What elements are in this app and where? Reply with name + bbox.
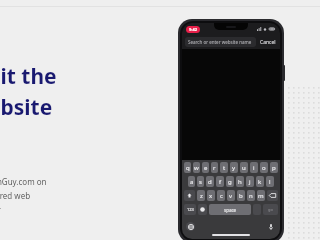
- staticText: z: [200, 192, 203, 200]
- button[interactable]: l: [266, 176, 274, 187]
- staticText: q: [186, 164, 190, 172]
- button[interactable]: s: [197, 176, 204, 187]
- staticText: y: [232, 164, 236, 172]
- button[interactable]: c: [217, 190, 225, 201]
- staticText: s: [199, 178, 202, 186]
- staticText: o: [262, 164, 266, 172]
- staticText: l: [269, 178, 271, 186]
- staticText: p: [272, 164, 276, 172]
- button[interactable]: z: [197, 190, 205, 201]
- button[interactable]: 123: [184, 204, 196, 215]
- staticText: a: [190, 178, 194, 186]
- button[interactable]: j: [246, 176, 254, 187]
- button[interactable]: h: [236, 176, 244, 187]
- button[interactable]: e: [202, 162, 209, 173]
- staticText: d: [208, 178, 212, 186]
- staticText: m: [258, 192, 264, 200]
- staticText: 123: [187, 207, 194, 212]
- button[interactable]: n: [247, 190, 255, 201]
- staticText: e: [204, 164, 208, 172]
- button[interactable]: r: [211, 162, 218, 173]
- staticText: go: [268, 207, 273, 212]
- button[interactable]: Switch keyboard: [186, 222, 195, 231]
- staticText: a preferred web: [0, 190, 31, 201]
- staticText: r: [213, 164, 216, 172]
- button[interactable]: g: [226, 176, 234, 187]
- button[interactable]: a: [188, 176, 195, 187]
- staticText: j: [249, 178, 251, 186]
- staticText: w: [194, 164, 199, 172]
- staticText: c: [220, 192, 223, 200]
- button[interactable]: y: [230, 162, 238, 173]
- button[interactable]: t: [220, 162, 228, 173]
- staticText: x: [209, 192, 213, 200]
- button[interactable]: Cancel: [259, 37, 277, 48]
- button[interactable]: i: [250, 162, 258, 173]
- button[interactable]: f: [216, 176, 224, 187]
- staticText: Visit the: [0, 62, 57, 91]
- button[interactable]: p: [270, 162, 278, 173]
- button[interactable]: v: [227, 190, 235, 201]
- button[interactable]: b: [237, 190, 245, 201]
- staticText: h: [238, 178, 242, 186]
- staticText: t: [223, 164, 226, 172]
- button[interactable]: go: [263, 204, 278, 215]
- button[interactable]: Backspace: [267, 190, 278, 201]
- button[interactable]: x: [207, 190, 215, 201]
- staticText: f: [219, 178, 222, 186]
- staticText: k: [258, 178, 262, 186]
- staticText: 9:42: [189, 27, 197, 32]
- staticText: Cancel: [260, 39, 276, 46]
- staticText: ThePornGuy.com on: [0, 176, 47, 187]
- staticText: Search or enter website name: [188, 39, 252, 45]
- staticText: n: [249, 192, 253, 200]
- button[interactable]: o: [260, 162, 268, 173]
- staticText: v: [229, 192, 233, 200]
- button[interactable]: Shift: [184, 190, 195, 201]
- button[interactable]: Emoji: [198, 204, 207, 215]
- staticText: g: [228, 178, 232, 186]
- staticText: u: [242, 164, 246, 172]
- staticText: i: [253, 164, 255, 172]
- button[interactable]: q: [184, 162, 191, 173]
- button[interactable]: Search or enter website name: [185, 37, 256, 47]
- button[interactable]: d: [206, 176, 214, 187]
- button[interactable]: k: [256, 176, 264, 187]
- staticText: website: [0, 93, 53, 122]
- button[interactable]: m: [257, 190, 265, 201]
- staticText: b: [239, 192, 243, 200]
- button[interactable]: w: [193, 162, 200, 173]
- button[interactable]: Dictation: [266, 222, 275, 231]
- staticText: space: [224, 207, 237, 213]
- button[interactable]: u: [240, 162, 248, 173]
- button[interactable]: space: [209, 204, 251, 215]
- staticText: browser: [0, 204, 1, 215]
